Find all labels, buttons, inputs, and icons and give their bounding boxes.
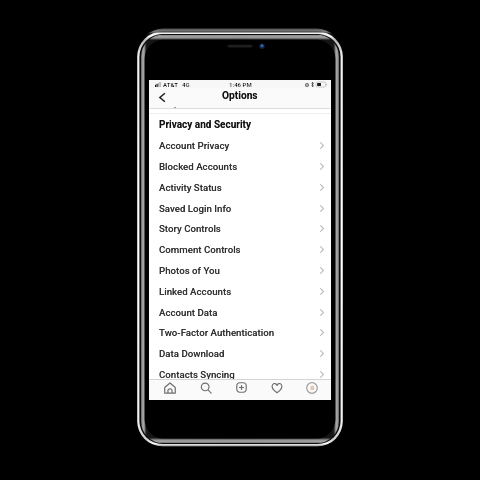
staticText: Two-Factor Authentication [159, 327, 275, 338]
button[interactable]: Story Controls [149, 218, 331, 239]
button[interactable]: Linked Accounts [149, 281, 331, 302]
staticText: Data Download [159, 348, 225, 359]
staticText: Linked Accounts [159, 286, 232, 297]
staticText: Comment Controls [159, 244, 241, 255]
button[interactable]: Comment Controls [149, 239, 331, 260]
staticText: Story Controls [159, 223, 221, 234]
staticText: Comment Controls [159, 244, 241, 255]
staticText: Contacts Syncing [159, 369, 235, 380]
staticText: Options [222, 90, 258, 102]
staticText: Contacts Syncing [159, 369, 235, 380]
staticText: Story Controls [159, 223, 221, 234]
staticText: Saved Login Info [159, 203, 232, 214]
staticText: Privacy and Security [159, 119, 251, 131]
staticText: Linked Accounts [159, 286, 232, 297]
button[interactable]: Search [194, 379, 218, 396]
button[interactable]: Data Download [149, 343, 331, 364]
staticText: Account Privacy [159, 140, 230, 151]
staticText: Blocked Accounts [159, 161, 238, 172]
staticText: Options [222, 90, 258, 102]
staticText: Blocked Accounts [159, 161, 238, 172]
button[interactable]: Home [158, 379, 182, 396]
staticText: Data Download [159, 348, 225, 359]
button[interactable]: Photos of You [149, 260, 331, 281]
button[interactable]: Back [154, 89, 170, 105]
staticText: Photos of You [159, 265, 220, 276]
staticText: Privacy and Security [159, 119, 251, 131]
button[interactable]: Contacts Syncing [149, 364, 331, 385]
staticText: 4G [182, 81, 190, 88]
staticText: Account Data [159, 307, 218, 318]
button[interactable]: Activity [265, 379, 289, 396]
staticText: Activity Status [159, 182, 222, 193]
button[interactable]: Blocked Accounts [149, 156, 331, 177]
button[interactable]: Account Data [149, 302, 331, 323]
staticText: AT&T [163, 81, 179, 88]
button[interactable]: Profile [300, 379, 324, 396]
staticText: Account Data [159, 307, 218, 318]
button[interactable]: Saved Login Info [149, 198, 331, 219]
staticText: Two-Factor Authentication [159, 327, 275, 338]
staticText: 1:46 PM [229, 81, 252, 88]
staticText: Saved Login Info [159, 203, 232, 214]
staticText: Activity Status [159, 182, 222, 193]
button[interactable]: Account Privacy [149, 135, 331, 156]
button[interactable]: Two-Factor Authentication [149, 322, 331, 343]
button[interactable]: New post [229, 379, 253, 396]
staticText: Account Privacy [159, 140, 230, 151]
staticText: Photos of You [159, 265, 220, 276]
button[interactable]: Activity Status [149, 177, 331, 198]
